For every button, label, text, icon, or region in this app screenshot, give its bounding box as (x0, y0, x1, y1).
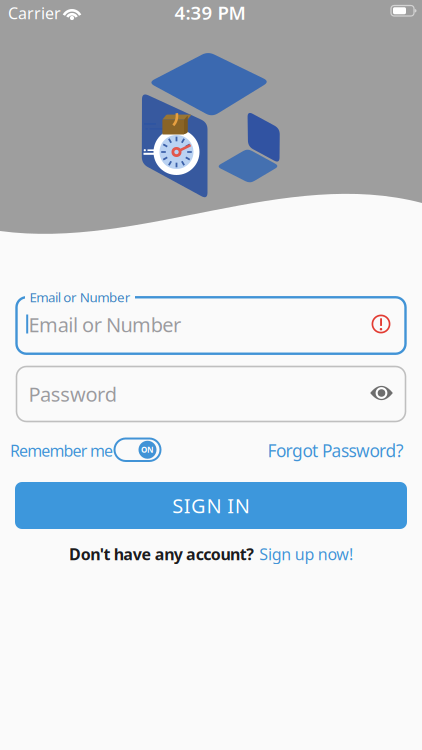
button[interactable]: SIGN IN (15, 482, 407, 529)
staticText: Don't have any account? (69, 543, 254, 565)
staticText: Email or Number (29, 288, 131, 306)
staticText: Password (28, 381, 117, 407)
staticText: Remember me (10, 440, 113, 461)
button[interactable]: Remember me ON (114, 438, 160, 461)
staticText: Sign up now! (259, 543, 353, 565)
button[interactable]: Password (16, 366, 405, 421)
staticText: ON (141, 444, 154, 455)
button[interactable]: Sign up now! (259, 543, 353, 565)
staticText: SIGN IN (172, 492, 250, 519)
button[interactable]: Show password (370, 385, 393, 400)
staticText: Forgot Password? (267, 439, 404, 462)
button[interactable]: Forgot Password? (224, 439, 404, 462)
staticText: Email or Number (28, 311, 181, 338)
staticText: 4:39 PM (174, 0, 245, 25)
staticText: Carrier (8, 2, 61, 24)
button[interactable]: Email or Number (16, 297, 405, 354)
